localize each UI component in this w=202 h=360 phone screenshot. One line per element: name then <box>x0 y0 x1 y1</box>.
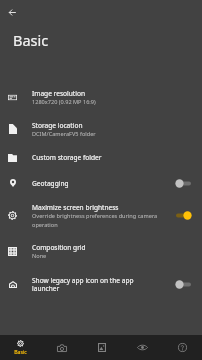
button[interactable]: Basic <box>0 335 41 360</box>
button[interactable]: Show legacy app icon on the app launcher <box>0 268 202 300</box>
staticText: Maximize screen brightness <box>32 203 119 212</box>
staticText: Composition grid <box>32 243 86 252</box>
button[interactable]: Image resolution <box>0 81 202 113</box>
button[interactable]: Tab <box>82 335 122 360</box>
staticText: None <box>32 252 47 260</box>
staticText: Geotagging <box>32 179 69 188</box>
staticText: Storage location <box>32 121 83 130</box>
button[interactable]: Back <box>4 4 20 20</box>
staticText: Override brightness preferences during c… <box>32 212 158 228</box>
staticText: Basic <box>14 348 27 355</box>
button[interactable]: Tab <box>122 335 162 360</box>
button[interactable]: Maximize screen brightness <box>0 196 202 234</box>
staticText: Basic <box>13 30 49 50</box>
button[interactable]: Custom storage folder <box>0 145 202 170</box>
staticText: Custom storage folder <box>32 153 102 162</box>
button[interactable]: Geotagging <box>0 170 202 196</box>
button[interactable]: Storage location <box>0 113 202 145</box>
staticText: Show legacy app icon on the app launcher <box>32 276 134 293</box>
staticText: Image resolution <box>32 89 85 98</box>
button[interactable]: Tab <box>162 335 202 360</box>
staticText: 1280x720 (0.92 MP 16:9) <box>32 98 96 106</box>
button[interactable]: Composition grid <box>0 234 202 268</box>
button[interactable]: Tab <box>41 335 82 360</box>
staticText: DCIM/CameraFV5 folder <box>32 130 96 138</box>
